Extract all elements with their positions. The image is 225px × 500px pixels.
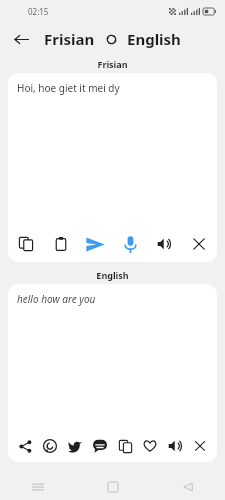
button[interactable]: Voice input [118, 232, 142, 256]
button[interactable]: Back [8, 26, 34, 52]
button[interactable]: Swap languages [102, 30, 120, 48]
button[interactable]: Recent apps [0, 474, 75, 500]
button[interactable]: Copy [113, 434, 137, 458]
button[interactable]: Home [75, 474, 150, 500]
button[interactable]: Close [188, 434, 212, 458]
button[interactable]: SMS [88, 434, 112, 458]
button[interactable]: Back [150, 474, 225, 500]
button[interactable]: Speak [163, 434, 187, 458]
staticText: hello how are you [17, 292, 96, 306]
button[interactable]: Clear [187, 232, 211, 256]
button[interactable]: Translate [83, 232, 107, 256]
button[interactable]: Speak [152, 232, 176, 256]
staticText: Hoi, hoe giet it mei dy [17, 81, 120, 95]
button[interactable]: Hoi, hoe giet it mei dy [8, 73, 217, 226]
button[interactable]: Frisian [44, 29, 95, 49]
button[interactable]: English [127, 29, 181, 49]
button[interactable]: hello how are you [8, 284, 217, 430]
button[interactable]: Favourite [138, 434, 162, 458]
button[interactable]: Share [13, 434, 37, 458]
staticText: Frisian [0, 58, 225, 70]
button[interactable]: WhatsApp [38, 434, 62, 458]
staticText: 02:15 [28, 6, 49, 17]
staticText: English [0, 269, 225, 281]
button[interactable]: Paste [49, 232, 73, 256]
button[interactable]: Copy [14, 232, 38, 256]
button[interactable]: Twitter [63, 434, 87, 458]
